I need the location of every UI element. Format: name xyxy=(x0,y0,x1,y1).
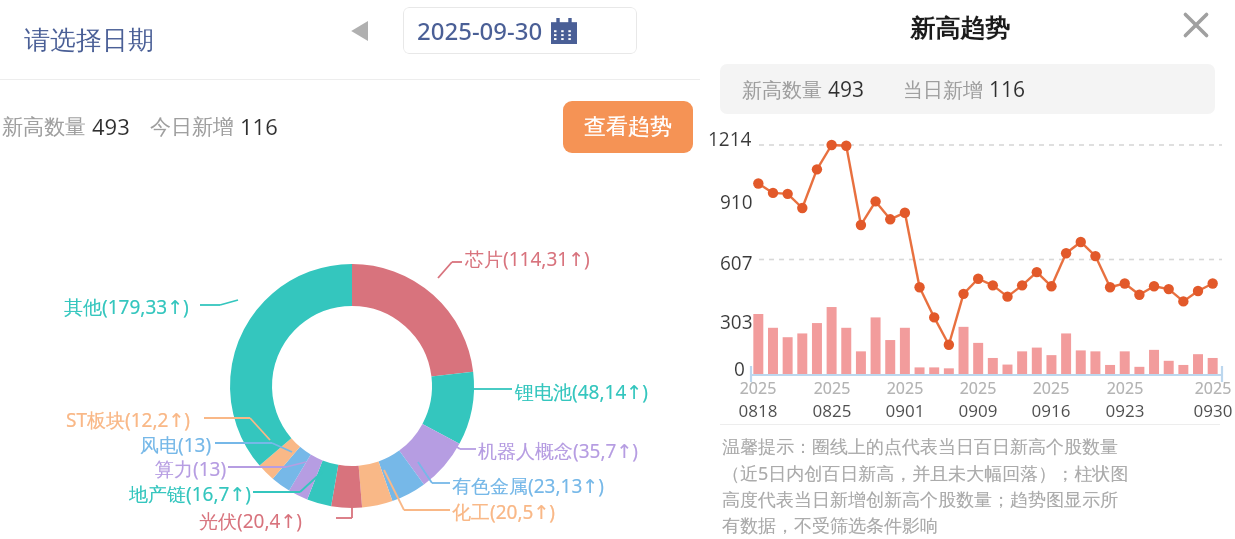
staticText: 机器人概念(35,7↑) xyxy=(478,438,639,464)
staticText: 风电(13) xyxy=(140,432,212,458)
staticText: 2025 xyxy=(735,377,781,399)
staticText: 0923 xyxy=(1102,399,1148,422)
staticText: ST板块(12,2↑) xyxy=(66,407,191,433)
button[interactable]: 2025-09-30 xyxy=(403,7,637,54)
staticText: 2025 xyxy=(1028,377,1074,399)
staticText: 910 xyxy=(720,189,753,215)
staticText: 116 xyxy=(989,75,1026,104)
staticText: 116 xyxy=(240,111,278,141)
staticText: 芯片(114,31↑) xyxy=(465,246,590,272)
staticText: 1214 xyxy=(708,126,752,152)
staticText: 2025 xyxy=(809,377,855,399)
staticText: 查看趋势 xyxy=(584,113,672,141)
button[interactable]: 请选择日期 xyxy=(24,24,154,57)
staticText: 2025 xyxy=(882,377,928,399)
staticText: 新高数量 xyxy=(742,76,828,103)
staticText: 化工(20,5↑) xyxy=(452,499,556,525)
staticText: 2025 xyxy=(1190,377,1235,399)
staticText: 0901 xyxy=(882,399,928,422)
staticText: 今日新增 xyxy=(150,112,240,141)
staticText: 当日新增 xyxy=(903,76,989,103)
staticText: 2025 xyxy=(955,377,1001,399)
staticText: 607 xyxy=(720,250,753,276)
staticText: 其他(179,33↑) xyxy=(64,294,189,320)
staticText: 0825 xyxy=(809,399,855,422)
staticText: 0930 xyxy=(1190,399,1235,422)
staticText: 0916 xyxy=(1028,399,1074,422)
staticText: 温馨提示：圈线上的点代表当日百日新高个股数量 （近5日内创百日新高，并且未大幅回… xyxy=(722,436,1227,538)
button[interactable]: 查看趋势 xyxy=(563,101,693,153)
staticText: 有色金属(23,13↑) xyxy=(452,473,604,499)
staticText: 2025 xyxy=(1102,377,1148,399)
staticText: 0909 xyxy=(955,399,1001,422)
button[interactable]: Previous day xyxy=(340,11,380,51)
staticText: 0 xyxy=(734,356,745,382)
staticText: 493 xyxy=(92,111,130,141)
staticText: 新高趋势 xyxy=(910,13,1010,44)
staticText: 303 xyxy=(720,309,753,335)
staticText: 493 xyxy=(828,75,865,104)
button[interactable]: Close xyxy=(1173,2,1219,48)
staticText: 新高数量 xyxy=(2,112,92,141)
staticText: 地产链(16,7↑) xyxy=(129,481,252,507)
staticText: 光伏(20,4↑) xyxy=(199,508,303,534)
staticText: 算力(13) xyxy=(155,456,227,482)
staticText: 0818 xyxy=(735,399,781,422)
staticText: 2025-09-30 xyxy=(417,14,543,47)
staticText: 锂电池(48,14↑) xyxy=(515,379,648,405)
